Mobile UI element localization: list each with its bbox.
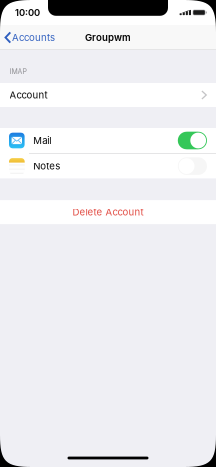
- button[interactable]: Mail: [0, 128, 216, 153]
- staticText: 10:00: [15, 7, 40, 18]
- button[interactable]: Accounts: [0, 25, 59, 50]
- staticText: Delete Account: [72, 206, 143, 218]
- staticText: Accounts: [12, 32, 55, 43]
- staticText: Notes: [33, 160, 60, 172]
- button[interactable]: Notes: [0, 154, 216, 179]
- staticText: Mail: [33, 135, 51, 146]
- button[interactable]: Account: [0, 83, 216, 107]
- staticText: Groupwm: [85, 32, 131, 43]
- staticText: IMAP: [10, 67, 27, 76]
- staticText: Account: [10, 89, 48, 101]
- button[interactable]: Delete Account: [0, 200, 216, 224]
